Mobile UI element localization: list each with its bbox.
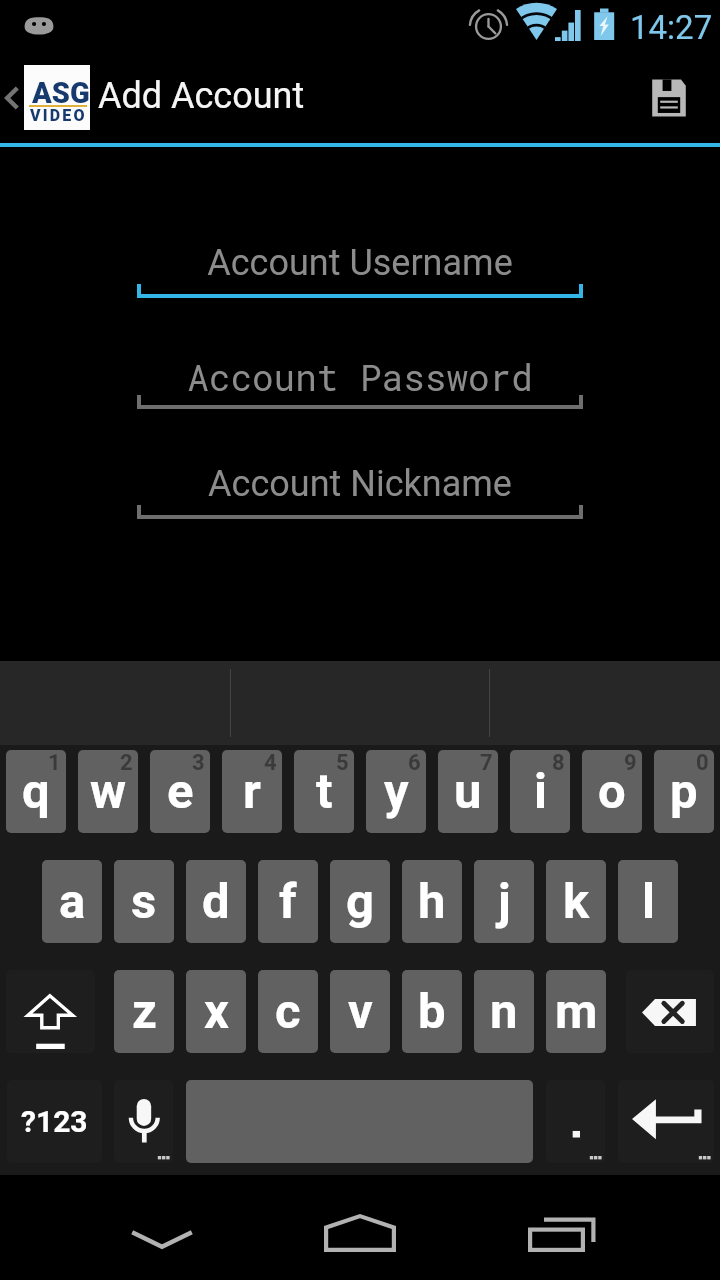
staticText: VIDEO — [30, 106, 87, 125]
staticText: g — [346, 873, 374, 930]
button[interactable]: Home — [284, 1175, 436, 1280]
staticText: Account Username — [137, 242, 583, 284]
staticText: t — [316, 763, 333, 820]
button[interactable]: Account Password — [137, 353, 583, 410]
button[interactable]: r — [222, 750, 282, 833]
button[interactable]: q — [6, 750, 66, 833]
button[interactable]: Backspace — [626, 970, 714, 1053]
button[interactable]: Shift — [6, 970, 95, 1053]
button[interactable]: f — [258, 860, 318, 943]
button[interactable]: g — [330, 860, 390, 943]
button[interactable]: a — [42, 860, 102, 943]
button[interactable]: l — [618, 860, 678, 943]
button[interactable]: Save — [618, 52, 720, 143]
button[interactable]: Account Username — [137, 242, 583, 299]
staticText: k — [563, 873, 590, 930]
staticText: 5 — [336, 750, 349, 776]
staticText: h — [418, 873, 446, 930]
button[interactable]: Navigate up — [0, 52, 90, 143]
button[interactable]: w — [78, 750, 138, 833]
staticText: r — [243, 763, 261, 820]
button[interactable]: s — [114, 860, 174, 943]
staticText: s — [131, 873, 157, 930]
staticText: 14:27 — [630, 8, 713, 47]
button[interactable]: z — [114, 970, 174, 1053]
button[interactable]: h — [402, 860, 462, 943]
staticText: z — [132, 983, 157, 1040]
button[interactable]: n — [474, 970, 534, 1053]
staticText: ASG — [32, 76, 90, 110]
staticText: a — [59, 873, 86, 930]
button[interactable]: p — [654, 750, 714, 833]
staticText: v — [348, 983, 373, 1040]
staticText: 4 — [264, 750, 277, 776]
staticText: Add Account — [98, 75, 305, 117]
button[interactable]: Hide keyboard — [82, 1180, 242, 1280]
staticText: f — [279, 873, 297, 930]
button[interactable]: i — [510, 750, 570, 833]
staticText: 1 — [48, 750, 61, 776]
staticText: p — [670, 763, 698, 820]
staticText: 3 — [192, 750, 205, 776]
staticText: d — [202, 873, 230, 930]
staticText: y — [384, 763, 409, 820]
staticText: Account Password — [137, 353, 583, 400]
button[interactable]: y — [366, 750, 426, 833]
staticText: e — [167, 763, 194, 820]
staticText: u — [454, 763, 482, 820]
staticText: 9 — [624, 750, 637, 776]
button[interactable]: Account Nickname — [137, 463, 583, 520]
button[interactable]: Recent apps — [488, 1175, 640, 1280]
staticText: o — [598, 763, 626, 820]
staticText: w — [90, 763, 127, 820]
button[interactable]: b — [402, 970, 462, 1053]
staticText: b — [418, 983, 446, 1040]
button[interactable]: m — [546, 970, 606, 1053]
staticText: 2 — [120, 750, 133, 776]
staticText: 7 — [480, 750, 493, 776]
staticText: m — [555, 983, 598, 1040]
button[interactable]: c — [258, 970, 318, 1053]
staticText: ?123 — [21, 1104, 88, 1139]
button[interactable]: e — [150, 750, 210, 833]
button[interactable]: d — [186, 860, 246, 943]
button[interactable]: x — [186, 970, 246, 1053]
staticText: n — [490, 983, 518, 1040]
staticText: i — [534, 763, 547, 820]
staticText: 6 — [408, 750, 421, 776]
staticText: c — [275, 983, 301, 1040]
button[interactable]: Voice input — [114, 1080, 173, 1163]
staticText: 0 — [696, 750, 709, 776]
staticText: l — [642, 873, 655, 930]
button[interactable]: v — [330, 970, 390, 1053]
button[interactable]: o — [582, 750, 642, 833]
button[interactable]: Period — [546, 1080, 605, 1163]
button[interactable]: Enter — [618, 1080, 714, 1163]
staticText: j — [498, 873, 511, 930]
staticText: 8 — [552, 750, 565, 776]
staticText: Account Nickname — [137, 463, 583, 505]
button[interactable]: k — [546, 860, 606, 943]
button[interactable]: t — [294, 750, 354, 833]
staticText: x — [204, 983, 229, 1040]
button[interactable]: ?123 — [7, 1080, 102, 1163]
button[interactable]: j — [474, 860, 534, 943]
staticText: q — [22, 763, 50, 820]
button[interactable]: u — [438, 750, 498, 833]
